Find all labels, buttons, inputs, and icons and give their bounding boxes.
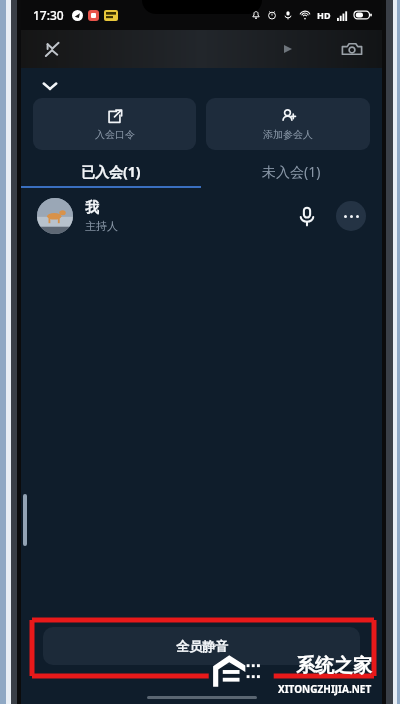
button[interactable]: 已入会(1) — [21, 156, 201, 186]
staticText: 未入会(1) — [262, 162, 321, 181]
staticText: 全员静音 — [176, 638, 228, 654]
button[interactable]: 入会口令 — [33, 98, 196, 150]
staticText: 入会口令 — [95, 128, 135, 141]
button[interactable]: Minimize — [41, 38, 63, 60]
staticText: XITONGZHIJIA.NET — [278, 682, 372, 696]
button[interactable]: 我 — [21, 188, 382, 244]
staticText: 17:30 — [33, 7, 64, 23]
staticText: HD — [317, 9, 331, 21]
staticText: 已入会(1) — [81, 162, 141, 181]
staticText: 我 — [85, 199, 99, 217]
button[interactable]: Camera — [340, 37, 364, 61]
staticText: 系统之家 — [296, 654, 372, 678]
button[interactable]: 未入会(1) — [201, 156, 382, 186]
button[interactable]: 添加参会人 — [206, 98, 370, 150]
staticText: 主持人 — [85, 219, 118, 233]
button[interactable]: More options — [336, 201, 366, 231]
staticText: 添加参会人 — [263, 128, 313, 141]
button[interactable]: Microphone — [294, 203, 320, 229]
button[interactable]: Collapse — [37, 74, 63, 98]
button[interactable]: 全员静音 — [43, 627, 360, 665]
